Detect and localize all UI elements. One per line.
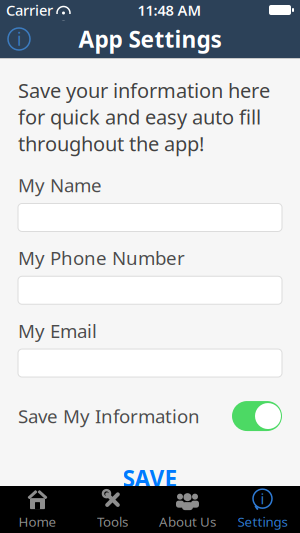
button[interactable]: i — [225, 486, 300, 533]
staticText: My Phone Number — [18, 245, 185, 270]
staticText: Save My Information — [18, 404, 200, 428]
button[interactable]: About Us — [150, 486, 225, 533]
staticText: Save your information here for quick and… — [18, 77, 270, 157]
staticText: i — [17, 27, 21, 50]
staticText: My Email — [18, 318, 97, 343]
staticText: About Us — [159, 513, 216, 530]
button[interactable]: Save My Information toggle — [232, 401, 282, 431]
staticText: Carrier — [6, 0, 53, 20]
staticText: SAVE — [122, 463, 177, 493]
button[interactable]: SAVE — [18, 455, 282, 501]
staticText: My Name — [18, 173, 102, 197]
staticText: 11:48 AM — [137, 0, 201, 20]
button[interactable]: Information — [0, 20, 38, 58]
staticText: i — [260, 489, 264, 508]
button[interactable]: Tools — [75, 486, 150, 533]
staticText: Home — [18, 513, 56, 530]
button[interactable]: Home — [0, 486, 75, 533]
staticText: App Settings — [78, 24, 221, 54]
staticText: Tools — [97, 513, 128, 530]
staticText: Settings — [237, 513, 287, 530]
